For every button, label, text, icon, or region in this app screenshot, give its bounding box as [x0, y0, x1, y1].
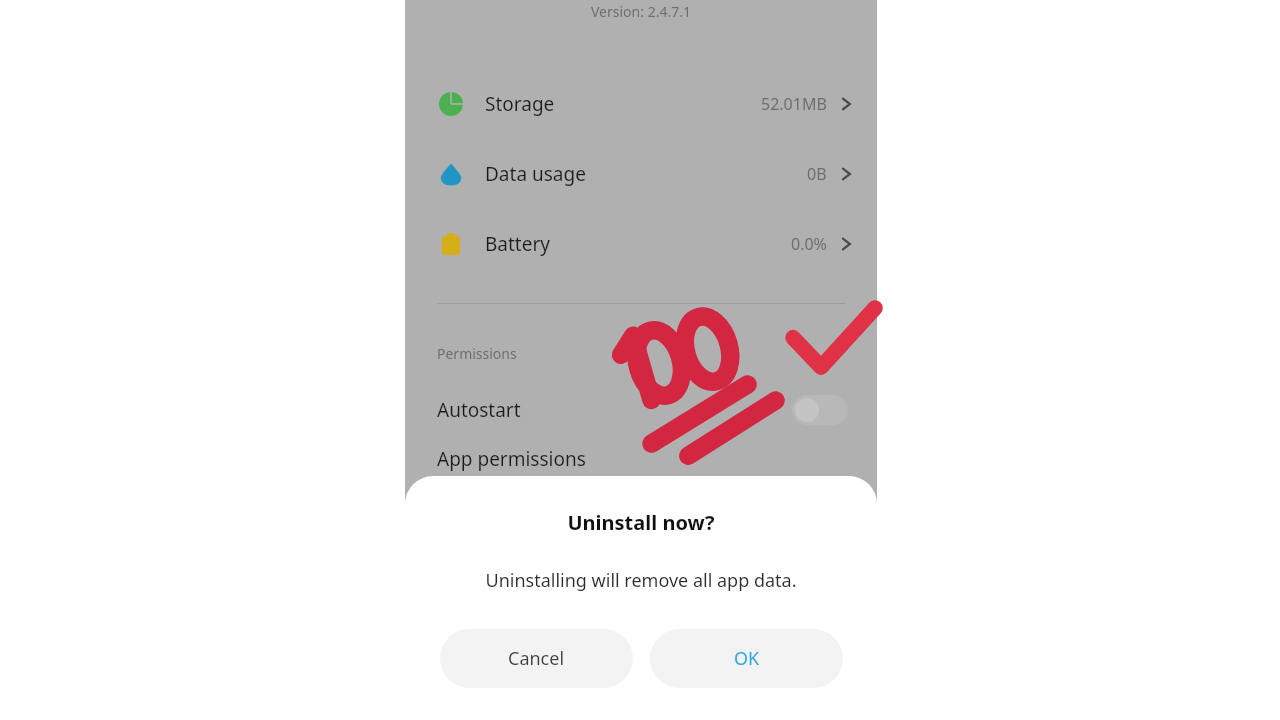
staticText: App permissions — [437, 446, 586, 472]
staticText: Autostart — [437, 397, 521, 423]
button[interactable]: Autostart toggle — [792, 395, 848, 425]
staticText: Battery — [485, 231, 550, 257]
button[interactable]: Data usage — [405, 150, 877, 198]
staticText: Uninstalling will remove all app data. — [405, 568, 877, 593]
button[interactable]: Storage — [405, 80, 877, 128]
staticText: OK — [734, 646, 760, 671]
staticText: Uninstall now? — [405, 509, 877, 536]
staticText: Cancel — [508, 646, 565, 671]
staticText: 0.0% — [791, 233, 827, 255]
button[interactable]: App permissions — [405, 435, 877, 483]
staticText: Version: 2.4.7.1 — [591, 2, 691, 21]
staticText: 0B — [807, 163, 827, 185]
staticText: Permissions — [437, 344, 517, 363]
button[interactable]: Autostart — [405, 386, 877, 434]
button[interactable]: Battery — [405, 220, 877, 268]
button[interactable]: OK — [650, 629, 843, 688]
staticText: Data usage — [485, 161, 586, 187]
staticText: Storage — [485, 91, 555, 117]
button[interactable]: Cancel — [440, 629, 633, 688]
staticText: 52.01MB — [761, 93, 827, 115]
